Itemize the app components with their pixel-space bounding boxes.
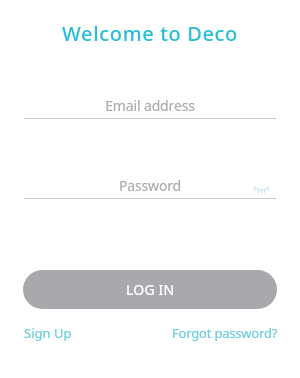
button[interactable]: LOG IN (23, 270, 277, 309)
button[interactable]: Email address (24, 92, 276, 123)
staticText: LOG IN (126, 280, 175, 299)
button[interactable]: Forgot password? (164, 317, 286, 349)
staticText: Password (24, 176, 276, 195)
staticText: Forgot password? (172, 324, 278, 342)
staticText: Email address (24, 96, 276, 115)
button[interactable]: Show password (250, 177, 272, 199)
button[interactable]: Password (24, 172, 276, 203)
button[interactable]: Sign Up (16, 317, 80, 349)
staticText: Sign Up (24, 324, 72, 342)
staticText: Welcome to Deco (0, 20, 300, 47)
